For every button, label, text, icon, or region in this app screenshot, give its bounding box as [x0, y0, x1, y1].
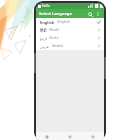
button[interactable]: More options — [94, 10, 102, 18]
button[interactable]: Search — [86, 10, 94, 18]
button[interactable]: Home — [36, 132, 58, 140]
button[interactable]: English — [36, 18, 104, 26]
button[interactable]: Profile — [81, 132, 104, 140]
staticText: (Urdu) — [49, 36, 59, 40]
staticText: हिंदी — [40, 28, 47, 33]
staticText: عربى — [40, 44, 50, 49]
staticText: اردو — [40, 36, 47, 41]
button[interactable]: اردو — [36, 34, 104, 42]
button[interactable]: हिंदी — [36, 26, 104, 34]
button[interactable]: Categories — [58, 132, 81, 140]
button[interactable]: عربى — [36, 42, 104, 50]
staticText: English — [40, 20, 55, 25]
staticText: (Hindi) — [49, 28, 59, 32]
staticText: (English) — [57, 20, 70, 24]
staticText: (Arabic) — [52, 44, 64, 48]
staticText: Select Language — [39, 11, 72, 17]
staticText: Hello — [42, 4, 50, 8]
